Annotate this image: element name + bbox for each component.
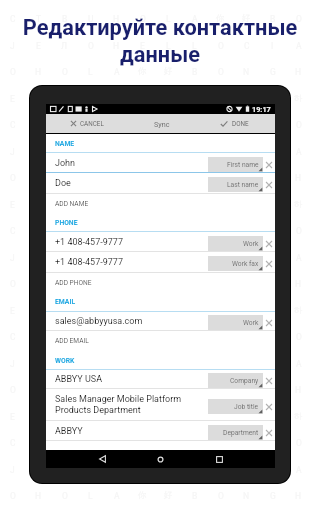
- staticText: O: [296, 120, 302, 130]
- staticText: O: [114, 412, 120, 422]
- staticText: G: [270, 491, 276, 501]
- staticText: H: [295, 491, 302, 501]
- staticText: A: [114, 491, 120, 501]
- button[interactable]: WORK: [46, 351, 275, 370]
- button[interactable]: CANCEL: [70, 114, 139, 133]
- staticText: G: [270, 67, 276, 77]
- button[interactable]: Remove field: [263, 256, 274, 271]
- button[interactable]: Back: [92, 450, 112, 468]
- button[interactable]: ADD NAME: [46, 194, 275, 213]
- staticText: L: [192, 147, 197, 157]
- staticText: Work: [243, 319, 259, 327]
- button[interactable]: NAME: [46, 134, 275, 153]
- staticText: J: [10, 253, 15, 263]
- button[interactable]: PHONE: [46, 213, 275, 232]
- button[interactable]: sales@abbyyusa.com: [46, 312, 275, 331]
- staticText: O: [62, 279, 68, 289]
- staticText: U: [88, 14, 94, 24]
- button[interactable]: Remove field: [263, 373, 274, 388]
- button[interactable]: John: [46, 153, 275, 173]
- staticText: B: [270, 226, 276, 236]
- button[interactable]: Work: [208, 315, 263, 330]
- button[interactable]: Remove field: [263, 236, 274, 251]
- staticText: B: [62, 438, 68, 448]
- staticText: L: [166, 120, 171, 130]
- staticText: John: [55, 158, 76, 169]
- staticText: O: [62, 173, 68, 183]
- button[interactable]: Remove field: [263, 157, 274, 172]
- staticText: E: [140, 41, 145, 51]
- staticText: I: [63, 412, 66, 422]
- button[interactable]: Remove field: [263, 177, 274, 192]
- staticText: O: [140, 14, 146, 24]
- staticText: O: [218, 41, 224, 51]
- button[interactable]: Remove field: [263, 315, 274, 330]
- button[interactable]: ABBYY: [46, 421, 275, 441]
- staticText: U: [88, 438, 94, 448]
- staticText: H: [113, 41, 120, 51]
- staticText: Л: [61, 253, 68, 263]
- button[interactable]: Last name: [208, 177, 263, 192]
- button[interactable]: Remove field: [263, 425, 274, 440]
- button[interactable]: Home: [150, 450, 170, 468]
- button[interactable]: Recents: [209, 450, 229, 468]
- button[interactable]: Department: [208, 425, 263, 440]
- staticText: Department: [223, 429, 259, 437]
- staticText: Doe: [55, 178, 71, 189]
- staticText: 好: [242, 437, 251, 448]
- button[interactable]: +1 408-457-9777: [46, 252, 275, 273]
- staticText: O: [10, 67, 16, 77]
- button[interactable]: Work fax: [208, 256, 263, 271]
- button[interactable]: Remove field: [263, 399, 274, 414]
- button[interactable]: Work: [208, 236, 263, 251]
- staticText: 你: [138, 66, 147, 77]
- button[interactable]: Company: [208, 373, 263, 388]
- staticText: A: [88, 412, 94, 422]
- staticText: B: [192, 67, 198, 77]
- button[interactable]: DONE: [220, 114, 268, 133]
- button[interactable]: EMAIL: [46, 292, 275, 312]
- staticText: O: [10, 173, 16, 183]
- staticText: N: [243, 67, 250, 77]
- button[interactable]: Doe: [46, 173, 275, 194]
- button[interactable]: Sync: [147, 114, 177, 133]
- staticText: B: [192, 491, 198, 501]
- button[interactable]: +1 408-457-9777: [46, 232, 275, 252]
- staticText: O: [10, 385, 16, 395]
- staticText: N: [243, 385, 250, 395]
- button[interactable]: Job title: [208, 399, 263, 414]
- staticText: H: [139, 412, 146, 422]
- staticText: 好: [164, 490, 173, 501]
- staticText: H: [295, 279, 302, 289]
- staticText: O: [296, 438, 302, 448]
- staticText: A: [296, 253, 302, 263]
- staticText: 好: [242, 225, 251, 236]
- staticText: O: [140, 226, 146, 236]
- staticText: J: [10, 465, 15, 475]
- staticText: A: [296, 359, 302, 369]
- button[interactable]: ADD EMAIL: [46, 331, 275, 351]
- staticText: O: [296, 332, 302, 342]
- staticText: 하: [294, 93, 303, 104]
- button[interactable]: ABBYY USA: [46, 370, 275, 389]
- staticText: I: [63, 200, 66, 210]
- button[interactable]: ADD PHONE: [46, 273, 275, 293]
- staticText: O: [218, 173, 224, 183]
- button[interactable]: Sales Manager Mobile Platform Products D…: [46, 389, 275, 421]
- button[interactable]: First name: [208, 157, 263, 172]
- staticText: B: [62, 332, 68, 342]
